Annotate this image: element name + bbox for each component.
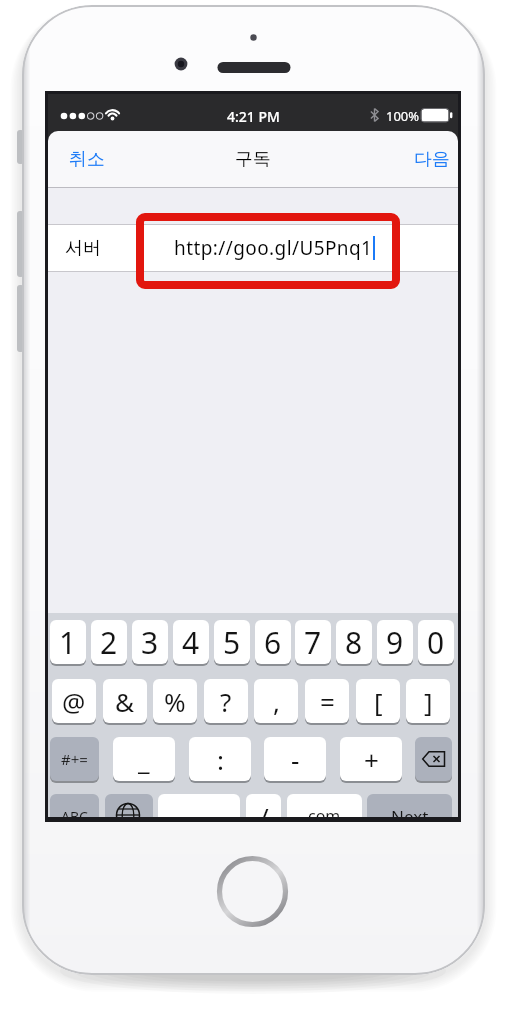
staticText: 3 <box>141 622 159 663</box>
staticText: http://goo.gl/U5Pnq1 <box>174 235 373 261</box>
staticText: 6 <box>264 622 282 663</box>
button[interactable]: ? <box>204 679 248 723</box>
button[interactable]: 6 <box>255 620 291 664</box>
button[interactable]: [ <box>356 679 400 723</box>
button[interactable]: / <box>246 794 281 817</box>
button[interactable]: com <box>287 794 362 817</box>
staticText: = <box>320 684 335 719</box>
button[interactable]: 5 <box>214 620 250 664</box>
button[interactable]: - <box>264 737 326 781</box>
button[interactable]: 3 <box>132 620 168 664</box>
staticText: - <box>291 742 300 777</box>
button[interactable] <box>105 794 153 817</box>
button[interactable]: 다음 <box>390 131 450 188</box>
button[interactable]: ] <box>406 679 450 723</box>
staticText: : <box>217 742 224 777</box>
button[interactable]: , <box>254 679 298 723</box>
staticText: ] <box>424 684 433 719</box>
staticText: % <box>164 684 186 719</box>
staticText: 0 <box>427 622 445 663</box>
button[interactable]: + <box>340 737 402 781</box>
button[interactable] <box>415 737 452 781</box>
button[interactable]: % <box>153 679 197 723</box>
button[interactable]: 4 <box>173 620 209 664</box>
staticText: 4 <box>182 622 200 663</box>
button[interactable] <box>158 794 240 817</box>
staticText: 1 <box>59 622 77 663</box>
button[interactable]: = <box>305 679 349 723</box>
button[interactable]: 8 <box>336 620 372 664</box>
staticText: / <box>259 799 269 817</box>
staticText: & <box>115 684 135 719</box>
button[interactable]: #+= <box>50 737 99 781</box>
staticText: @ <box>62 684 86 719</box>
button[interactable]: ABC <box>50 794 99 817</box>
button[interactable]: 9 <box>377 620 413 664</box>
staticText: ABC <box>61 807 88 817</box>
button[interactable]: 7 <box>295 620 331 664</box>
staticText: 다음 <box>414 148 450 171</box>
button[interactable]: 2 <box>91 620 127 664</box>
button[interactable]: 취소 <box>69 131 129 188</box>
staticText: 5 <box>223 622 241 663</box>
staticText: 서버 <box>65 237 101 260</box>
button[interactable]: _ <box>113 737 175 781</box>
staticText: #+= <box>61 749 88 769</box>
staticText: _ <box>138 742 150 777</box>
button[interactable]: Next <box>367 794 452 817</box>
button[interactable]: @ <box>52 679 96 723</box>
staticText: ? <box>220 684 232 719</box>
staticText: 8 <box>345 622 363 663</box>
staticText: + <box>364 742 379 777</box>
button[interactable]: & <box>103 679 147 723</box>
staticText: 2 <box>100 622 118 663</box>
staticText: 9 <box>386 622 404 663</box>
button[interactable]: : <box>189 737 251 781</box>
button[interactable] <box>217 856 288 927</box>
button[interactable] <box>48 225 458 271</box>
staticText: 4:21 PM <box>227 107 280 126</box>
staticText: 취소 <box>69 148 105 171</box>
staticText: Next <box>391 805 429 817</box>
staticText: [ <box>374 684 383 719</box>
staticText: , <box>273 684 280 719</box>
staticText: 100% <box>386 107 420 125</box>
button[interactable]: 1 <box>50 620 86 664</box>
button[interactable]: 0 <box>418 620 454 664</box>
staticText: 7 <box>304 622 322 663</box>
staticText: 구독 <box>235 148 271 171</box>
staticText: com <box>308 805 341 817</box>
